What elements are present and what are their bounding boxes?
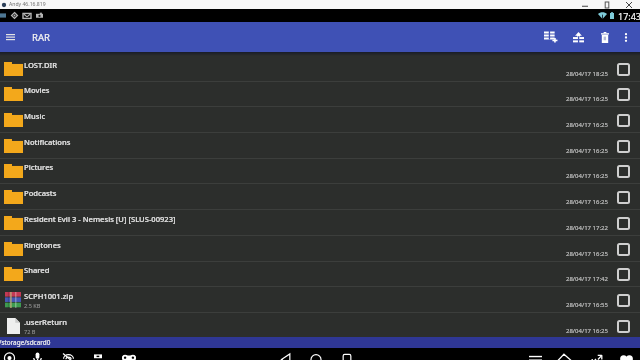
- button[interactable]: Close: [618, 0, 640, 9]
- staticText: 28/04/17 16:55: [566, 301, 608, 309]
- button[interactable]: Minimize: [574, 0, 596, 9]
- button[interactable]: Music: [0, 107, 640, 133]
- staticText: RAR: [32, 31, 50, 44]
- staticText: Movies: [24, 85, 50, 95]
- staticText: Music: [24, 111, 46, 121]
- staticText: Ringtones: [24, 240, 61, 250]
- staticText: .userReturn: [24, 317, 67, 327]
- button[interactable]: Select Music: [617, 114, 630, 127]
- button[interactable]: Home: [310, 352, 322, 360]
- staticText: Andy 46.16.819: [9, 1, 46, 8]
- button[interactable]: .userReturn: [0, 313, 640, 337]
- staticText: Notifications: [24, 137, 71, 147]
- button[interactable]: Select Pictures: [617, 165, 630, 178]
- button[interactable]: Resident Evil 3 - Nemesis [U] [SLUS-0092…: [0, 210, 640, 236]
- button[interactable]: Podcasts: [0, 184, 640, 210]
- staticText: 2.5 KB: [24, 302, 41, 310]
- staticText: SCPH1001.zip: [24, 291, 74, 301]
- button[interactable]: Shake detection off: [62, 352, 75, 360]
- button[interactable]: Notifications: [0, 133, 640, 159]
- button[interactable]: Select SCPH1001.zip: [617, 294, 630, 307]
- button[interactable]: Select .userReturn: [617, 320, 630, 333]
- staticText: /storage/sdcard0: [0, 338, 51, 347]
- button[interactable]: Microphone: [32, 352, 43, 360]
- staticText: 72 B: [24, 328, 36, 336]
- staticText: Shared: [24, 265, 50, 275]
- button[interactable]: Select Notifications: [617, 140, 630, 153]
- staticText: 28/04/17 16:25: [566, 327, 608, 335]
- button[interactable]: Pictures: [0, 158, 640, 184]
- button[interactable]: Location: [3, 352, 16, 360]
- button[interactable]: Select Movies: [617, 88, 630, 101]
- button[interactable]: Maximize: [596, 0, 618, 9]
- button[interactable]: Menu: [529, 352, 542, 360]
- staticText: Pictures: [24, 162, 54, 172]
- button[interactable]: Movies: [0, 81, 640, 107]
- button[interactable]: Delete: [593, 22, 617, 52]
- button[interactable]: Ringtones: [0, 236, 640, 262]
- staticText: 28/04/17 16:25: [566, 198, 608, 206]
- button[interactable]: Select Ringtones: [617, 243, 630, 256]
- button[interactable]: Shared: [0, 261, 640, 287]
- staticText: 28/04/17 16:25: [566, 250, 608, 258]
- button[interactable]: Favorite: [620, 352, 633, 360]
- staticText: 28/04/17 16:25: [566, 147, 608, 155]
- staticText: 28/04/17 16:25: [566, 172, 608, 180]
- button[interactable]: Extract archive: [565, 22, 591, 52]
- staticText: 28/04/17 18:25: [566, 70, 608, 78]
- button[interactable]: SCPH1001.zip: [0, 287, 640, 313]
- staticText: 28/04/17 16:25: [566, 121, 608, 129]
- staticText: 17:43: [618, 10, 640, 22]
- staticText: 28/04/17 16:25: [566, 95, 608, 103]
- button[interactable]: Select Resident Evil 3 - Nemesis [U] [SL…: [617, 217, 630, 230]
- staticText: 28/04/17 17:22: [566, 224, 608, 232]
- staticText: Podcasts: [24, 188, 57, 198]
- button[interactable]: Screenshot: [558, 352, 571, 360]
- button[interactable]: /storage/sdcard0: [0, 337, 640, 348]
- button[interactable]: Select Shared: [617, 268, 630, 281]
- button[interactable]: Back: [280, 352, 292, 360]
- button[interactable]: More options: [616, 22, 636, 52]
- button[interactable]: Recent apps: [341, 352, 353, 360]
- button[interactable]: Open navigation drawer: [0, 22, 21, 52]
- button[interactable]: Gamepad: [122, 352, 136, 360]
- button[interactable]: LOST.DIR: [0, 56, 640, 82]
- button[interactable]: Fullscreen: [591, 352, 603, 360]
- button[interactable]: Select Podcasts: [617, 191, 630, 204]
- staticText: 28/04/17 17:42: [566, 275, 608, 283]
- button[interactable]: Keyboard: [94, 352, 102, 360]
- staticText: LOST.DIR: [24, 60, 57, 70]
- button[interactable]: Add to archive: [537, 22, 564, 52]
- staticText: Resident Evil 3 - Nemesis [U] [SLUS-0092…: [24, 214, 176, 224]
- button[interactable]: Select LOST.DIR: [617, 63, 630, 76]
